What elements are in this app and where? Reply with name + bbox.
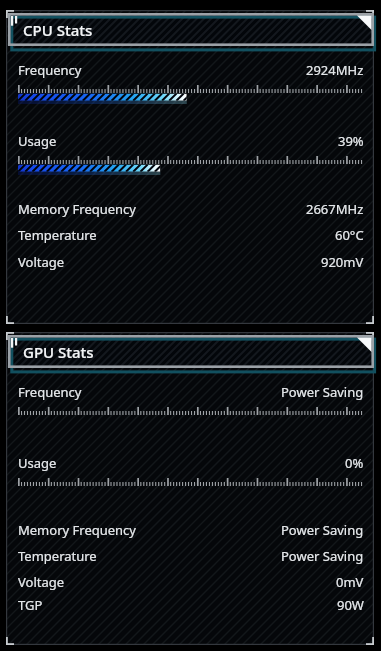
staticText: Usage (18, 132, 57, 150)
button[interactable]: Memory Frequency (18, 521, 364, 539)
staticText: 39% (338, 132, 364, 150)
staticText: Voltage (18, 573, 65, 591)
staticText: CPU Stats (23, 20, 93, 40)
staticText: 60°C (335, 226, 364, 244)
button[interactable] (8, 335, 374, 377)
staticText: Frequency (18, 383, 82, 401)
staticText: GPU Stats (23, 342, 94, 362)
staticText: Temperature (18, 226, 97, 244)
staticText: Power Saving (281, 547, 364, 565)
staticText: Power Saving (281, 383, 364, 401)
staticText: Usage (18, 454, 57, 472)
staticText: TGP (18, 596, 43, 614)
button[interactable]: Frequency (18, 383, 364, 401)
staticText: Memory Frequency (18, 521, 136, 539)
button[interactable]: Usage (18, 454, 364, 472)
staticText: Frequency (18, 61, 82, 79)
staticText: Power Saving (281, 521, 364, 539)
staticText: Memory Frequency (18, 200, 136, 218)
staticText: Voltage (18, 253, 65, 271)
button[interactable]: Temperature (18, 547, 364, 565)
button[interactable]: TGP (18, 596, 364, 614)
button[interactable]: Voltage (18, 253, 364, 271)
staticText: 90W (337, 596, 364, 614)
button[interactable]: Usage (18, 132, 364, 150)
staticText: 0% (345, 454, 364, 472)
staticText: 2667MHz (306, 200, 364, 218)
button[interactable] (8, 13, 374, 55)
button[interactable]: Frequency (18, 61, 364, 79)
staticText: Temperature (18, 547, 97, 565)
button[interactable]: Temperature (18, 226, 364, 244)
staticText: 2924MHz (306, 61, 364, 79)
staticText: 0mV (336, 573, 364, 591)
staticText: 920mV (321, 253, 364, 271)
button[interactable]: Voltage (18, 573, 364, 591)
button[interactable]: Memory Frequency (18, 200, 364, 218)
